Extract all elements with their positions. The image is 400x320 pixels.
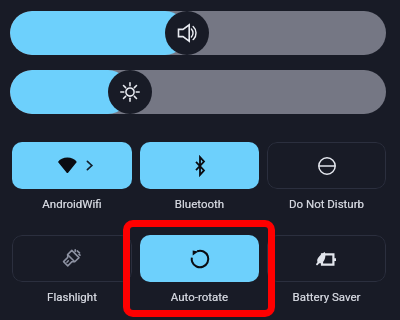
- staticText: Auto-rotate: [140, 290, 259, 303]
- button[interactable]: Volume: [10, 11, 386, 55]
- button[interactable]: Auto-rotate: [140, 235, 259, 303]
- staticText: Flashlight: [12, 290, 132, 303]
- button[interactable]: Do Not Disturb: [267, 142, 386, 210]
- staticText: AndroidWifi: [12, 197, 132, 210]
- staticText: Do Not Disturb: [267, 197, 386, 210]
- button[interactable]: Flashlight: [12, 235, 132, 303]
- staticText: Bluetooth: [140, 197, 259, 210]
- staticText: Battery Saver: [267, 290, 386, 303]
- button[interactable]: AndroidWifi: [12, 142, 132, 210]
- button[interactable]: Bluetooth: [140, 142, 259, 210]
- button[interactable]: Battery Saver: [267, 235, 386, 303]
- button[interactable]: Brightness: [10, 70, 386, 114]
